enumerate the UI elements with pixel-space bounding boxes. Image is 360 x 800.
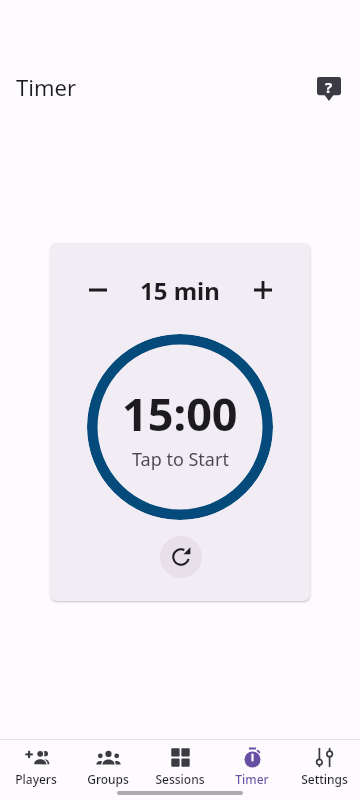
button[interactable]: Groups [72,740,144,789]
button[interactable]: 15:00 [87,334,273,520]
button[interactable]: Increase minutes [243,270,283,310]
staticText: ? [325,77,333,97]
staticText: Players [15,771,57,787]
staticText: Timer [235,771,269,787]
staticText: 15:00 [122,383,238,444]
button[interactable]: Players [0,740,72,789]
staticText: Timer [16,72,76,102]
button[interactable]: Timer [216,740,288,789]
staticText: Sessions [155,771,205,787]
button[interactable]: Settings [288,740,360,789]
staticText: Groups [87,771,129,787]
staticText: Settings [301,771,348,787]
staticText: Tap to Start [132,447,229,472]
staticText: 15 min [140,274,220,307]
button[interactable]: Help [305,65,353,113]
button[interactable]: Sessions [144,740,216,789]
button[interactable]: Reset timer [160,536,202,578]
button[interactable]: Decrease minutes [78,270,118,310]
